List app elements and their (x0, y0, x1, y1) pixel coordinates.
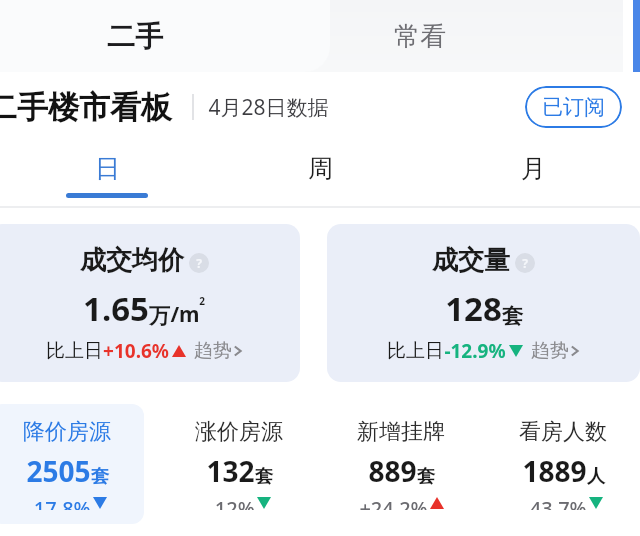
button[interactable]: 成交均价 (0, 224, 300, 382)
staticText: 128 (445, 286, 502, 331)
staticText: +10.6% (103, 338, 169, 364)
staticText: 132 (206, 452, 255, 490)
staticText: -12.9% (444, 338, 506, 364)
staticText: 2505 (26, 452, 91, 490)
staticText: ? (196, 255, 202, 271)
staticText: 比上日 (46, 339, 103, 363)
button[interactable]: 趋势 (194, 339, 243, 363)
staticText: /m (170, 300, 200, 329)
button[interactable]: 看房人数 (486, 404, 640, 524)
button[interactable]: 涨价房源 (162, 404, 316, 524)
button[interactable]: 月 (427, 142, 640, 208)
staticText: 常看 (394, 20, 446, 53)
staticText: 新增挂牌 (357, 418, 445, 446)
staticText: 比上日 (387, 339, 444, 363)
staticText: 涨价房源 (195, 418, 283, 446)
button[interactable]: 说明 (515, 253, 535, 273)
staticText: 889 (368, 452, 417, 490)
staticText: 套 (255, 465, 273, 488)
button[interactable]: 周 (214, 142, 427, 208)
staticText: ? (522, 255, 528, 271)
staticText: 2 (199, 294, 205, 308)
staticText: 4月28日数据 (208, 93, 329, 122)
staticText: 二手 (107, 19, 163, 54)
staticText: 成交均价 (80, 244, 184, 277)
staticText: 套 (502, 303, 523, 329)
staticText: 二手楼市看板 (0, 88, 172, 127)
button[interactable]: 说明 (189, 253, 209, 273)
staticText: 1.65 (83, 286, 149, 331)
staticText: 周 (308, 153, 333, 184)
staticText: 已订阅 (542, 94, 605, 120)
staticText: 人 (587, 465, 605, 488)
button[interactable]: 已订阅 (525, 86, 622, 128)
button[interactable]: 降价房源 (0, 404, 144, 524)
staticText: 成交量 (432, 244, 510, 277)
staticText: 月 (521, 153, 546, 184)
staticText: 趋势 (531, 339, 569, 363)
staticText: 看房人数 (519, 418, 607, 446)
button[interactable]: 成交量 (327, 224, 640, 382)
button[interactable]: 常看 (270, 0, 570, 72)
staticText: -43.7% (523, 495, 587, 510)
button[interactable]: 新增挂牌 (324, 404, 478, 524)
staticText: -12% (208, 495, 255, 510)
staticText: 套 (91, 465, 109, 488)
staticText: 万 (149, 303, 170, 329)
staticText: 1889 (522, 452, 587, 490)
staticText: 套 (417, 465, 435, 488)
button[interactable]: 趋势 (531, 339, 580, 363)
staticText: +24.2% (359, 495, 428, 510)
staticText: 日 (95, 153, 120, 184)
staticText: 趋势 (194, 339, 232, 363)
button[interactable]: 日 (0, 142, 214, 208)
staticText: -17.8% (27, 495, 91, 510)
staticText: 降价房源 (23, 418, 111, 446)
button[interactable]: 二手 (0, 0, 270, 72)
